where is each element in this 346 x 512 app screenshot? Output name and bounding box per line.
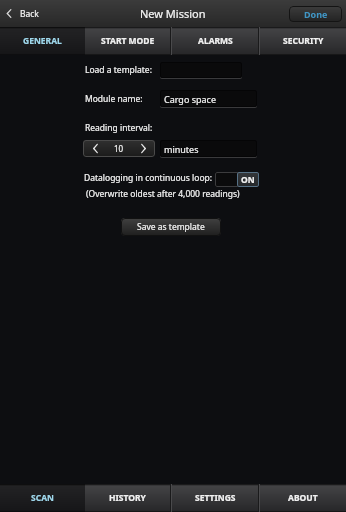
staticText: 10 (114, 143, 124, 154)
staticText: (Overwrite oldest after 4,000 readings) (86, 188, 240, 200)
button[interactable]: Datalogging continuous loop toggle, on (215, 172, 259, 187)
button[interactable]: Decrease interval (83, 140, 107, 157)
button[interactable]: SETTINGS (172, 484, 258, 512)
staticText: HISTORY (109, 492, 146, 504)
staticText: ABOUT (288, 492, 318, 504)
button[interactable]: Save as template (121, 218, 221, 236)
staticText: minutes (164, 143, 199, 155)
button[interactable]: SCAN (0, 484, 85, 512)
button[interactable]: Back (4, 0, 58, 27)
staticText: New Mission (140, 6, 206, 21)
staticText: Datalogging in continuous loop: (84, 172, 213, 184)
staticText: Done (304, 8, 328, 20)
staticText: Load a template: (85, 64, 152, 76)
staticText: Reading interval: (85, 122, 153, 134)
button[interactable]: START MODE (85, 27, 170, 55)
staticText: GENERAL (23, 35, 62, 47)
button[interactable]: SECURITY (260, 27, 346, 55)
button[interactable]: ABOUT (260, 484, 346, 512)
button[interactable]: HISTORY (85, 484, 170, 512)
staticText: Module name: (85, 93, 143, 105)
staticText: SCAN (31, 492, 54, 504)
staticText: Back (20, 8, 39, 20)
button[interactable]: Done (289, 6, 342, 22)
staticText: START MODE (101, 35, 155, 47)
staticText: Save as template (137, 221, 205, 233)
button[interactable]: Cargo space (160, 90, 257, 107)
button[interactable]: ALARMS (172, 27, 258, 55)
staticText: SETTINGS (195, 492, 236, 504)
staticText: ON (241, 174, 255, 186)
staticText: ALARMS (198, 35, 233, 47)
staticText: Cargo space (164, 93, 216, 105)
staticText: SECURITY (283, 35, 324, 47)
button[interactable]: Increase interval (131, 140, 155, 157)
button[interactable]: minutes (160, 140, 257, 157)
button[interactable]: GENERAL (0, 27, 85, 55)
